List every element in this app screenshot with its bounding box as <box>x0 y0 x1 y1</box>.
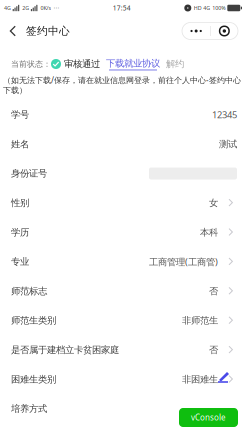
button[interactable]: 师范标志 <box>0 276 246 306</box>
button[interactable]: 师范生类别 <box>0 306 246 335</box>
button[interactable]: vConsole <box>179 408 238 427</box>
staticText: 困难生类别 <box>11 374 56 385</box>
staticText: 4G <box>203 4 210 12</box>
staticText: HD <box>194 4 202 12</box>
staticText: 当前状态： <box>11 59 51 69</box>
button[interactable]: 下载就业协议 <box>106 58 160 70</box>
button[interactable]: 性别 <box>0 188 246 218</box>
staticText: 女 <box>209 197 218 209</box>
staticText: 非困难生 <box>182 374 218 385</box>
staticText: 4G <box>4 4 11 12</box>
staticText: 测试 <box>219 138 237 150</box>
staticText: vConsole <box>191 412 226 423</box>
staticText: 学号 <box>11 109 29 120</box>
staticText: 本科 <box>200 227 218 238</box>
button[interactable]: 专业 <box>0 247 246 276</box>
staticText: （如无法下载/保存，请在就业信息网登录，前往个人中心-签约中心下载） <box>3 75 241 95</box>
button[interactable]: 学历 <box>0 218 246 247</box>
staticText: 师范标志 <box>11 285 47 297</box>
staticText: 下载就业协议 <box>106 58 160 69</box>
button[interactable]: 身份证号 <box>0 159 246 188</box>
staticText: 学历 <box>11 227 29 238</box>
staticText: 0K/s <box>40 4 51 12</box>
button[interactable]: Back <box>0 16 26 46</box>
staticText: 身份证号 <box>11 168 47 179</box>
staticText: 非师范生 <box>182 315 218 326</box>
staticText: 培养方式 <box>11 403 47 414</box>
staticText: 姓名 <box>11 138 29 150</box>
button[interactable]: More <box>182 22 238 39</box>
staticText: 审核通过 <box>64 58 100 70</box>
staticText: 否 <box>209 285 218 297</box>
button[interactable]: 困难生类别 <box>0 365 246 394</box>
button[interactable]: 培养方式 <box>0 394 246 423</box>
staticText: 100% <box>212 4 225 12</box>
staticText: 签约中心 <box>26 24 70 37</box>
staticText: ··· <box>53 4 59 12</box>
staticText: 专业 <box>11 256 29 267</box>
staticText: 解约 <box>166 58 184 70</box>
staticText: 工商管理(工商管) <box>149 255 218 268</box>
staticText: 是否属于建档立卡贫困家庭 <box>11 344 119 356</box>
button[interactable]: 解约 <box>166 58 184 70</box>
staticText: 17:54 <box>113 4 131 12</box>
staticText: 师范生类别 <box>11 315 56 326</box>
staticText: 否 <box>209 344 218 356</box>
button[interactable]: 姓名 <box>0 129 246 159</box>
staticText: 12345 <box>212 108 237 121</box>
button[interactable]: 学号 <box>0 100 246 129</box>
staticText: 性别 <box>11 197 29 209</box>
staticText: 2G <box>22 4 29 12</box>
button[interactable]: 是否属于建档立卡贫困家庭 <box>0 335 246 365</box>
